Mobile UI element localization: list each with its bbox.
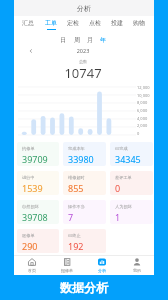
staticText: 7 bbox=[68, 211, 74, 223]
staticText: 自然损坏 bbox=[22, 204, 39, 209]
staticText: 定检 bbox=[67, 19, 79, 27]
staticText: 39709 bbox=[22, 153, 48, 165]
staticText: 0 bbox=[115, 182, 121, 194]
button[interactable]: 周 bbox=[70, 36, 83, 48]
button[interactable]: 维修超时 bbox=[63, 171, 106, 195]
staticText: 4,000 bbox=[137, 116, 148, 121]
button[interactable]: 自然损坏 bbox=[17, 200, 59, 224]
staticText: 操作不当 bbox=[68, 204, 85, 209]
staticText: 约修单 bbox=[22, 146, 35, 151]
staticText: 完成本年 bbox=[68, 146, 85, 151]
button[interactable]: 购物 bbox=[128, 19, 150, 31]
staticText: 2,000 bbox=[137, 123, 148, 128]
staticText: 报修单 bbox=[61, 268, 73, 273]
button[interactable]: 已终止 bbox=[63, 229, 106, 253]
button[interactable]: 汇总 bbox=[16, 19, 39, 31]
staticText: 已终止 bbox=[68, 233, 81, 238]
staticText: 12,000 bbox=[137, 85, 150, 90]
button[interactable]: 完成本年 bbox=[63, 142, 106, 166]
staticText: 购物 bbox=[133, 19, 145, 27]
button[interactable]: 月 bbox=[83, 36, 96, 48]
staticText: 10747 bbox=[13, 64, 153, 82]
button[interactable]: 差评工单 bbox=[110, 171, 153, 195]
staticText: 192 bbox=[68, 240, 84, 252]
staticText: 6,000 bbox=[137, 108, 148, 113]
staticText: 人为损坏 bbox=[115, 204, 132, 209]
button[interactable]: 工单 bbox=[39, 19, 62, 31]
button[interactable]: 定检 bbox=[62, 19, 84, 31]
staticText: 1 bbox=[115, 211, 121, 223]
staticText: 855 bbox=[68, 182, 84, 194]
button[interactable]: 日 bbox=[56, 36, 70, 48]
staticText: 我的 bbox=[133, 268, 141, 273]
button[interactable]: 投建 bbox=[106, 19, 128, 31]
button[interactable]: 退修单 bbox=[17, 229, 59, 253]
staticText: 周 bbox=[74, 36, 80, 44]
staticText: 维修超时 bbox=[68, 175, 85, 180]
button[interactable]: 人为损坏 bbox=[110, 200, 153, 224]
staticText: 0 bbox=[137, 131, 140, 136]
staticText: 分析 bbox=[98, 268, 106, 273]
button[interactable]: 点检 bbox=[84, 19, 106, 31]
button[interactable]: 已完成 bbox=[110, 142, 153, 166]
staticText: 差评工单 bbox=[115, 175, 132, 180]
staticText: 8,000 bbox=[137, 100, 148, 105]
staticText: 工单 bbox=[45, 19, 57, 27]
staticText: 2023 bbox=[13, 47, 153, 54]
staticText: 汇总 bbox=[22, 19, 34, 27]
staticText: 进行中 bbox=[22, 175, 35, 180]
button[interactable]: 首页 bbox=[14, 255, 49, 275]
staticText: 月 bbox=[87, 36, 93, 44]
button[interactable]: 年 bbox=[96, 36, 109, 48]
staticText: 34345 bbox=[115, 153, 141, 165]
staticText: 年 bbox=[100, 36, 106, 44]
staticText: 290 bbox=[22, 240, 38, 252]
staticText: 首页 bbox=[28, 268, 36, 273]
staticText: 总数 bbox=[13, 59, 153, 64]
button[interactable]: 约修单 bbox=[17, 142, 59, 166]
staticText: 10,000 bbox=[137, 93, 150, 98]
button[interactable]: 分析 bbox=[84, 255, 119, 275]
staticText: 数据分析 bbox=[60, 280, 108, 295]
button[interactable]: 操作不当 bbox=[63, 200, 106, 224]
button[interactable]: 进行中 bbox=[17, 171, 59, 195]
staticText: 分析 bbox=[77, 4, 91, 13]
staticText: 已完成 bbox=[115, 146, 128, 151]
button[interactable]: Previous year bbox=[25, 45, 37, 57]
staticText: 39708 bbox=[22, 211, 48, 223]
button[interactable]: 我的 bbox=[119, 255, 154, 275]
staticText: 1539 bbox=[22, 182, 43, 194]
staticText: 投建 bbox=[111, 19, 123, 27]
staticText: 33980 bbox=[68, 153, 94, 165]
button[interactable]: 报修单 bbox=[49, 255, 84, 275]
staticText: 点检 bbox=[89, 19, 101, 27]
staticText: 日 bbox=[60, 36, 66, 44]
staticText: 退修单 bbox=[22, 233, 35, 238]
